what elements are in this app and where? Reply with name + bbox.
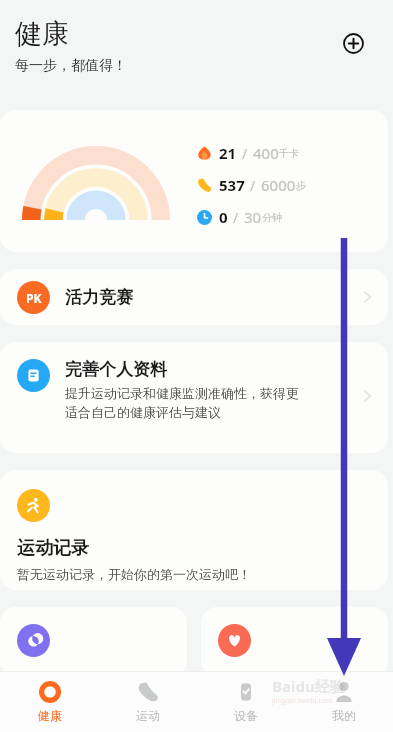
staticText: 设备	[234, 708, 258, 723]
button[interactable]: 完善个人资料	[0, 342, 388, 453]
staticText: /	[250, 176, 256, 195]
button[interactable]: PK	[0, 269, 388, 325]
staticText: 0	[219, 207, 228, 227]
button[interactable]: 健康	[0, 672, 99, 732]
staticText: 活力竞赛	[65, 287, 133, 308]
staticText: /	[242, 144, 248, 163]
staticText: 完善个人资料	[65, 359, 167, 380]
button[interactable]: 运动	[99, 672, 197, 732]
button[interactable]: 设备	[197, 672, 295, 732]
staticText: 暂无运动记录，开始你的第一次运动吧！	[17, 566, 251, 582]
staticText: 6000	[261, 175, 296, 195]
staticText: Baidu经验	[272, 676, 345, 696]
staticText: 健康	[38, 708, 62, 723]
button[interactable]	[0, 607, 187, 677]
button[interactable]: Add	[341, 31, 365, 55]
staticText: 健康	[15, 17, 69, 51]
staticText: /	[233, 208, 239, 227]
staticText: 千卡	[279, 147, 299, 160]
button[interactable]: 运动记录	[0, 470, 388, 590]
staticText: 步	[296, 179, 306, 192]
staticText: jingyan.baidu.com	[272, 696, 333, 706]
staticText: 21	[219, 143, 237, 163]
staticText: 30	[244, 207, 262, 227]
button[interactable]	[201, 607, 388, 677]
button[interactable]: 21	[0, 110, 388, 252]
staticText: 适合自己的健康评估与建议	[65, 404, 221, 420]
staticText: 提升运动记录和健康监测准确性，获得更	[65, 385, 299, 401]
staticText: 分钟	[262, 211, 282, 224]
button[interactable]: 我的	[295, 672, 393, 732]
staticText: 每一步，都值得！	[15, 57, 127, 75]
staticText: 我的	[332, 708, 356, 723]
staticText: 运动记录	[17, 537, 89, 560]
staticText: PK	[26, 290, 42, 306]
staticText: 400	[253, 143, 279, 163]
staticText: 537	[219, 175, 245, 195]
staticText: 运动	[136, 708, 160, 723]
